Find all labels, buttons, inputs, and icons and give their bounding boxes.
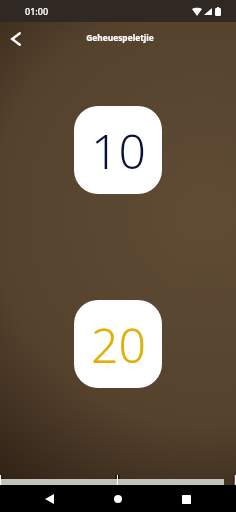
button[interactable]: Back [37, 487, 61, 511]
button[interactable]: Home [106, 487, 130, 511]
staticText: 20 [91, 312, 146, 377]
button[interactable]: Back [0, 23, 32, 55]
button[interactable]: 10 [74, 106, 162, 194]
button[interactable]: 20 [74, 300, 162, 388]
staticText: 01:00 [25, 5, 49, 17]
staticText: Geheuespeletjie [86, 32, 154, 43]
button[interactable]: Recent apps [174, 487, 198, 511]
staticText: 10 [91, 118, 146, 183]
